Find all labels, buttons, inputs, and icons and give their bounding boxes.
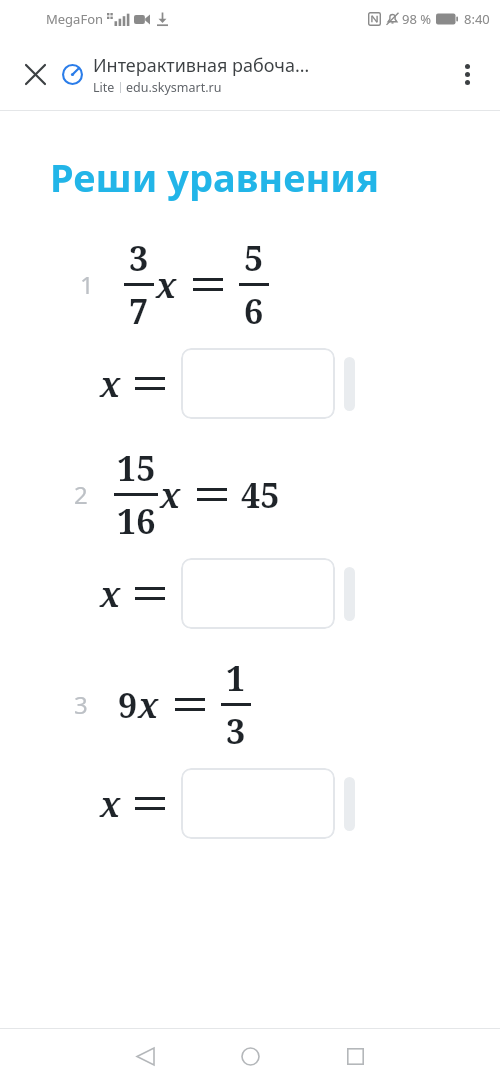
staticText: x <box>160 472 181 518</box>
staticText: 1 <box>80 268 94 301</box>
staticText: 3 <box>74 688 88 721</box>
button[interactable]: Close <box>12 51 58 97</box>
staticText: 7 <box>129 288 149 334</box>
staticText: x <box>100 361 121 407</box>
staticText: 98 % <box>402 10 432 28</box>
button[interactable]: Home <box>213 1029 287 1083</box>
staticText: x <box>156 262 177 308</box>
staticText: x <box>100 781 121 827</box>
staticText: 16 <box>117 498 156 544</box>
staticText: x <box>138 682 159 728</box>
staticText: 3 <box>129 235 149 281</box>
staticText: 2 <box>74 478 88 511</box>
button[interactable]: Back <box>108 1029 182 1083</box>
staticText: Реши уравнения <box>50 151 379 203</box>
button[interactable]: More options <box>444 51 490 97</box>
staticText: 8:40 <box>464 10 490 28</box>
staticText: 45 <box>241 472 280 518</box>
staticText: 5 <box>244 235 264 281</box>
staticText: 1 <box>226 655 246 701</box>
button[interactable]: Answer field <box>181 558 335 629</box>
button[interactable]: Recent apps <box>318 1029 392 1083</box>
staticText: 15 <box>117 445 156 491</box>
button[interactable]: Answer field <box>181 768 335 839</box>
staticText: edu.skysmart.ru <box>126 79 222 96</box>
staticText: Интерактивная рабоча… <box>93 53 310 78</box>
staticText: 9 <box>118 682 138 728</box>
staticText: x <box>100 571 121 617</box>
staticText: 6 <box>244 288 264 334</box>
staticText: MegaFon <box>46 10 104 28</box>
staticText: Lite <box>93 79 115 96</box>
button[interactable]: Answer field <box>181 348 335 419</box>
staticText: 3 <box>226 708 246 754</box>
